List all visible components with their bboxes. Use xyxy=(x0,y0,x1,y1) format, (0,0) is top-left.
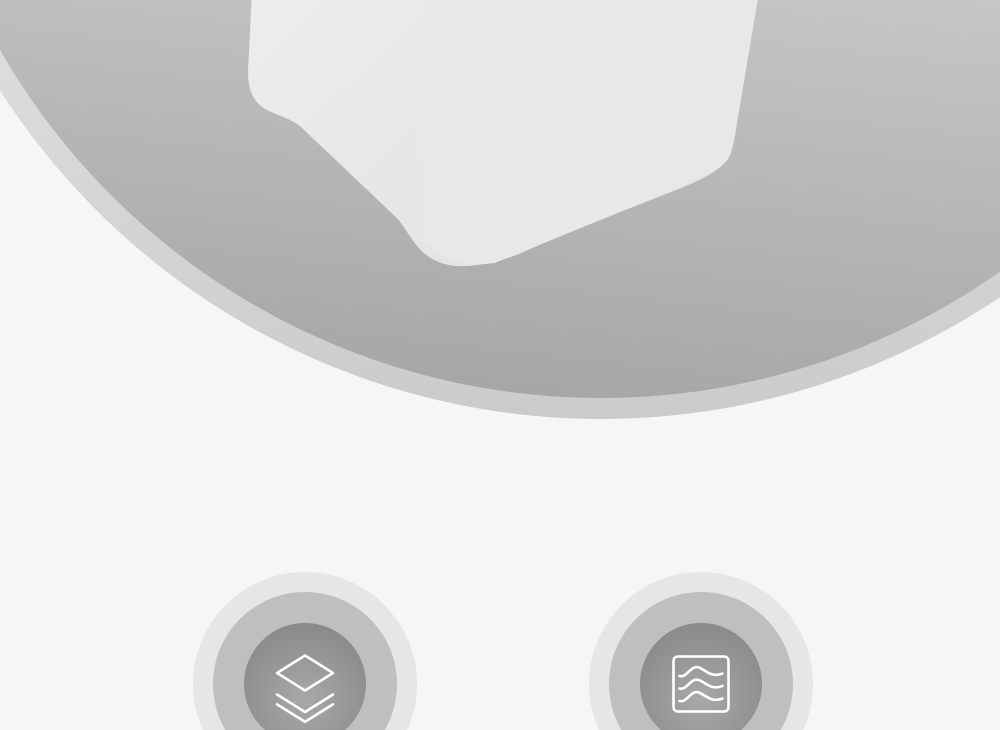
button[interactable]: Texture xyxy=(589,572,813,730)
button[interactable]: Layers xyxy=(193,572,417,730)
